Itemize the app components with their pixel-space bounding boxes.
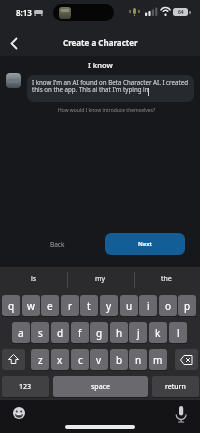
button[interactable]: is [0,269,67,289]
staticText: Back [50,240,65,249]
button[interactable]: g [90,322,108,343]
button[interactable]: a [12,322,30,343]
button[interactable]: my [67,269,133,289]
button[interactable]: r [61,295,79,316]
staticText: k [155,326,161,340]
staticText: j [137,326,140,340]
button[interactable]: b [110,349,128,370]
staticText: 8:13 [16,7,32,18]
staticText: t [87,299,91,313]
button[interactable] [175,405,187,423]
staticText: 64 [178,9,184,16]
button[interactable]: Next [105,233,185,255]
staticText: o [165,299,172,313]
button[interactable]: y [100,295,118,316]
button[interactable] [13,407,25,419]
button[interactable]: the [133,269,200,289]
button[interactable]: v [90,349,108,370]
button[interactable]: w [22,295,40,316]
staticText: z [38,353,43,367]
button[interactable]: return [152,376,199,397]
staticText: the [161,274,172,284]
button[interactable]: q [2,295,20,316]
staticText: v [96,353,102,367]
staticText: u [126,299,133,313]
button[interactable]: s [31,322,49,343]
staticText: return [165,382,186,392]
button[interactable]: u [120,295,138,316]
staticText: i [147,299,150,313]
staticText: d [57,326,64,340]
staticText: How would I know introduce themselves? [58,107,156,114]
button[interactable]: c [71,349,89,370]
staticText: I know [88,60,113,70]
button[interactable]: h [110,322,128,343]
staticText: Next [138,240,152,248]
staticText: a [18,326,24,340]
button[interactable] [2,349,25,370]
staticText: is [31,274,37,284]
staticText: my [95,274,106,284]
button[interactable]: n [129,349,147,370]
staticText: I know I'm an AI found on Beta Character… [32,78,189,94]
staticText: q [8,299,15,313]
button[interactable]: m [149,349,167,370]
staticText: m [153,353,163,367]
button[interactable]: 123 [2,376,49,397]
staticText: g [96,326,103,340]
staticText: w [27,299,35,313]
staticText: p [184,299,191,313]
staticText: l [177,326,180,340]
button[interactable]: space [53,376,148,397]
button[interactable]: e [41,295,59,316]
staticText: x [57,353,63,367]
button[interactable]: z [31,349,49,370]
button[interactable]: p [178,295,196,316]
staticText: n [135,353,142,367]
staticText: r [68,299,73,313]
staticText: h [116,326,123,340]
button[interactable]: o [159,295,177,316]
staticText: space [91,382,110,392]
staticText: Create a Character [63,37,138,48]
button[interactable]: t [80,295,98,316]
staticText: e [47,299,53,313]
staticText: c [78,353,83,367]
staticText: b [116,353,123,367]
button[interactable]: i [139,295,157,316]
button[interactable]: f [71,322,89,343]
staticText: y [106,299,112,313]
staticText: s [38,326,43,340]
staticText: f [78,326,82,340]
button[interactable]: k [149,322,167,343]
button[interactable]: j [129,322,147,343]
button[interactable]: d [51,322,69,343]
button[interactable]: Back [37,233,77,255]
button[interactable]: l [169,322,187,343]
button[interactable] [10,38,18,49]
button[interactable]: x [51,349,69,370]
button[interactable] [175,349,198,370]
staticText: 123 [19,382,32,392]
